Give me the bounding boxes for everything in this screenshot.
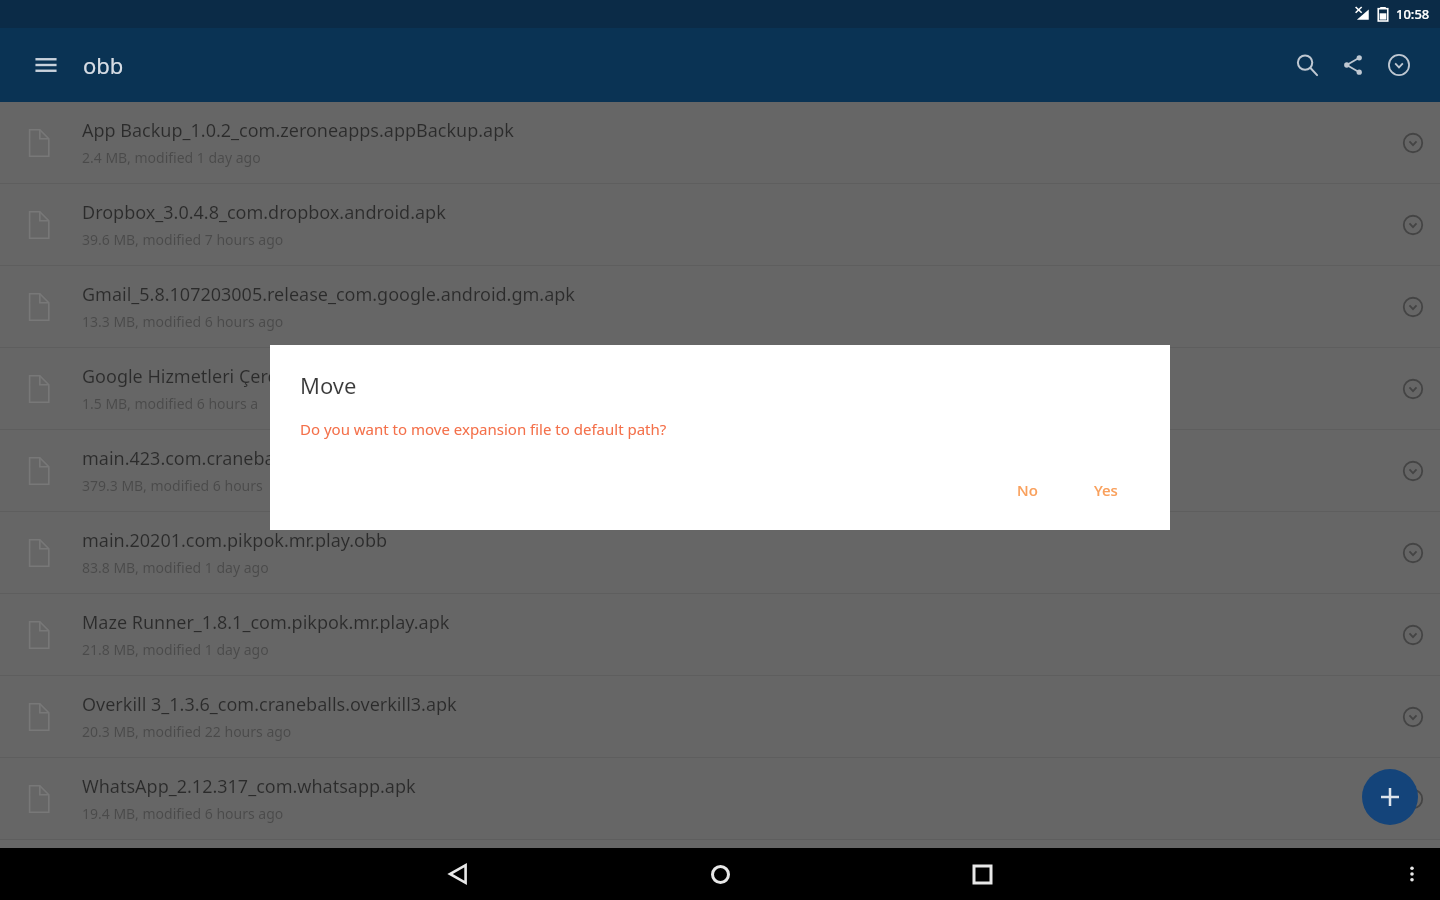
staticText: Gmail_5.8.107203005.release_com.google.a… [82, 282, 575, 307]
button[interactable]: Yes [1076, 472, 1136, 508]
staticText: Move [300, 370, 357, 400]
button[interactable]: More options [1384, 848, 1440, 900]
staticText: 13.3 MB, modified 6 hours ago [82, 312, 284, 331]
button[interactable]: Google Hizmetleri Çerçe [0, 348, 1440, 429]
staticText: 83.8 MB, modified 1 day ago [82, 558, 269, 577]
staticText: 379.3 MB, modified 6 hours [82, 476, 263, 495]
button[interactable]: More options [1386, 348, 1440, 429]
button[interactable]: Open navigation drawer [24, 43, 68, 87]
button[interactable]: More options [1386, 430, 1440, 511]
button[interactable]: Add [1362, 769, 1418, 825]
button[interactable]: Maze Runner_1.8.1_com.pikpok.mr.play.apk [0, 594, 1440, 675]
button[interactable]: Dropbox_3.0.4.8_com.dropbox.android.apk [0, 184, 1440, 265]
staticText: 19.4 MB, modified 6 hours ago [82, 804, 284, 823]
staticText: 20.3 MB, modified 22 hours ago [82, 722, 292, 741]
button[interactable]: No [999, 472, 1056, 508]
staticText: 1.5 MB, modified 6 hours a [82, 394, 259, 413]
button[interactable]: More options [1386, 512, 1440, 593]
button[interactable]: App Backup_1.0.2_com.zeroneapps.appBacku… [0, 102, 1440, 183]
button[interactable]: More options [1386, 594, 1440, 675]
staticText: WhatsApp_2.12.317_com.whatsapp.apk [82, 774, 416, 799]
staticText: Overkill 3_1.3.6_com.craneballs.overkill… [82, 692, 457, 717]
button[interactable]: main.423.com.craneball [0, 430, 1440, 511]
staticText: Do you want to move expansion file to de… [300, 419, 667, 439]
staticText: App Backup_1.0.2_com.zeroneapps.appBacku… [82, 118, 514, 143]
button[interactable]: More options [1386, 184, 1440, 265]
button[interactable]: More options [1386, 758, 1440, 839]
button[interactable]: Gmail_5.8.107203005.release_com.google.a… [0, 266, 1440, 347]
staticText: obb [83, 50, 124, 80]
button[interactable]: More options [1386, 266, 1440, 347]
button[interactable]: More options [1386, 102, 1440, 183]
button[interactable]: Expand [1376, 42, 1422, 88]
button[interactable]: Back [432, 848, 484, 900]
staticText: main.423.com.craneball [82, 446, 284, 471]
staticText: 10:58 [1396, 5, 1430, 23]
staticText: Dropbox_3.0.4.8_com.dropbox.android.apk [82, 200, 446, 225]
button[interactable]: Home [694, 848, 746, 900]
button[interactable]: More options [1386, 676, 1440, 757]
staticText: Maze Runner_1.8.1_com.pikpok.mr.play.apk [82, 610, 450, 635]
button[interactable]: Recent apps [956, 848, 1008, 900]
staticText: Yes [1094, 480, 1118, 500]
button[interactable]: Share [1330, 42, 1376, 88]
button[interactable]: Overkill 3_1.3.6_com.craneballs.overkill… [0, 676, 1440, 757]
staticText: 39.6 MB, modified 7 hours ago [82, 230, 284, 249]
button[interactable]: main.20201.com.pikpok.mr.play.obb [0, 512, 1440, 593]
button[interactable]: WhatsApp_2.12.317_com.whatsapp.apk [0, 758, 1440, 839]
staticText: 21.8 MB, modified 1 day ago [82, 640, 269, 659]
staticText: 2.4 MB, modified 1 day ago [82, 148, 261, 167]
staticText: main.20201.com.pikpok.mr.play.obb [82, 528, 388, 553]
staticText: No [1017, 480, 1038, 500]
button[interactable]: Search [1284, 42, 1330, 88]
staticText: Google Hizmetleri Çerçe [82, 364, 287, 389]
